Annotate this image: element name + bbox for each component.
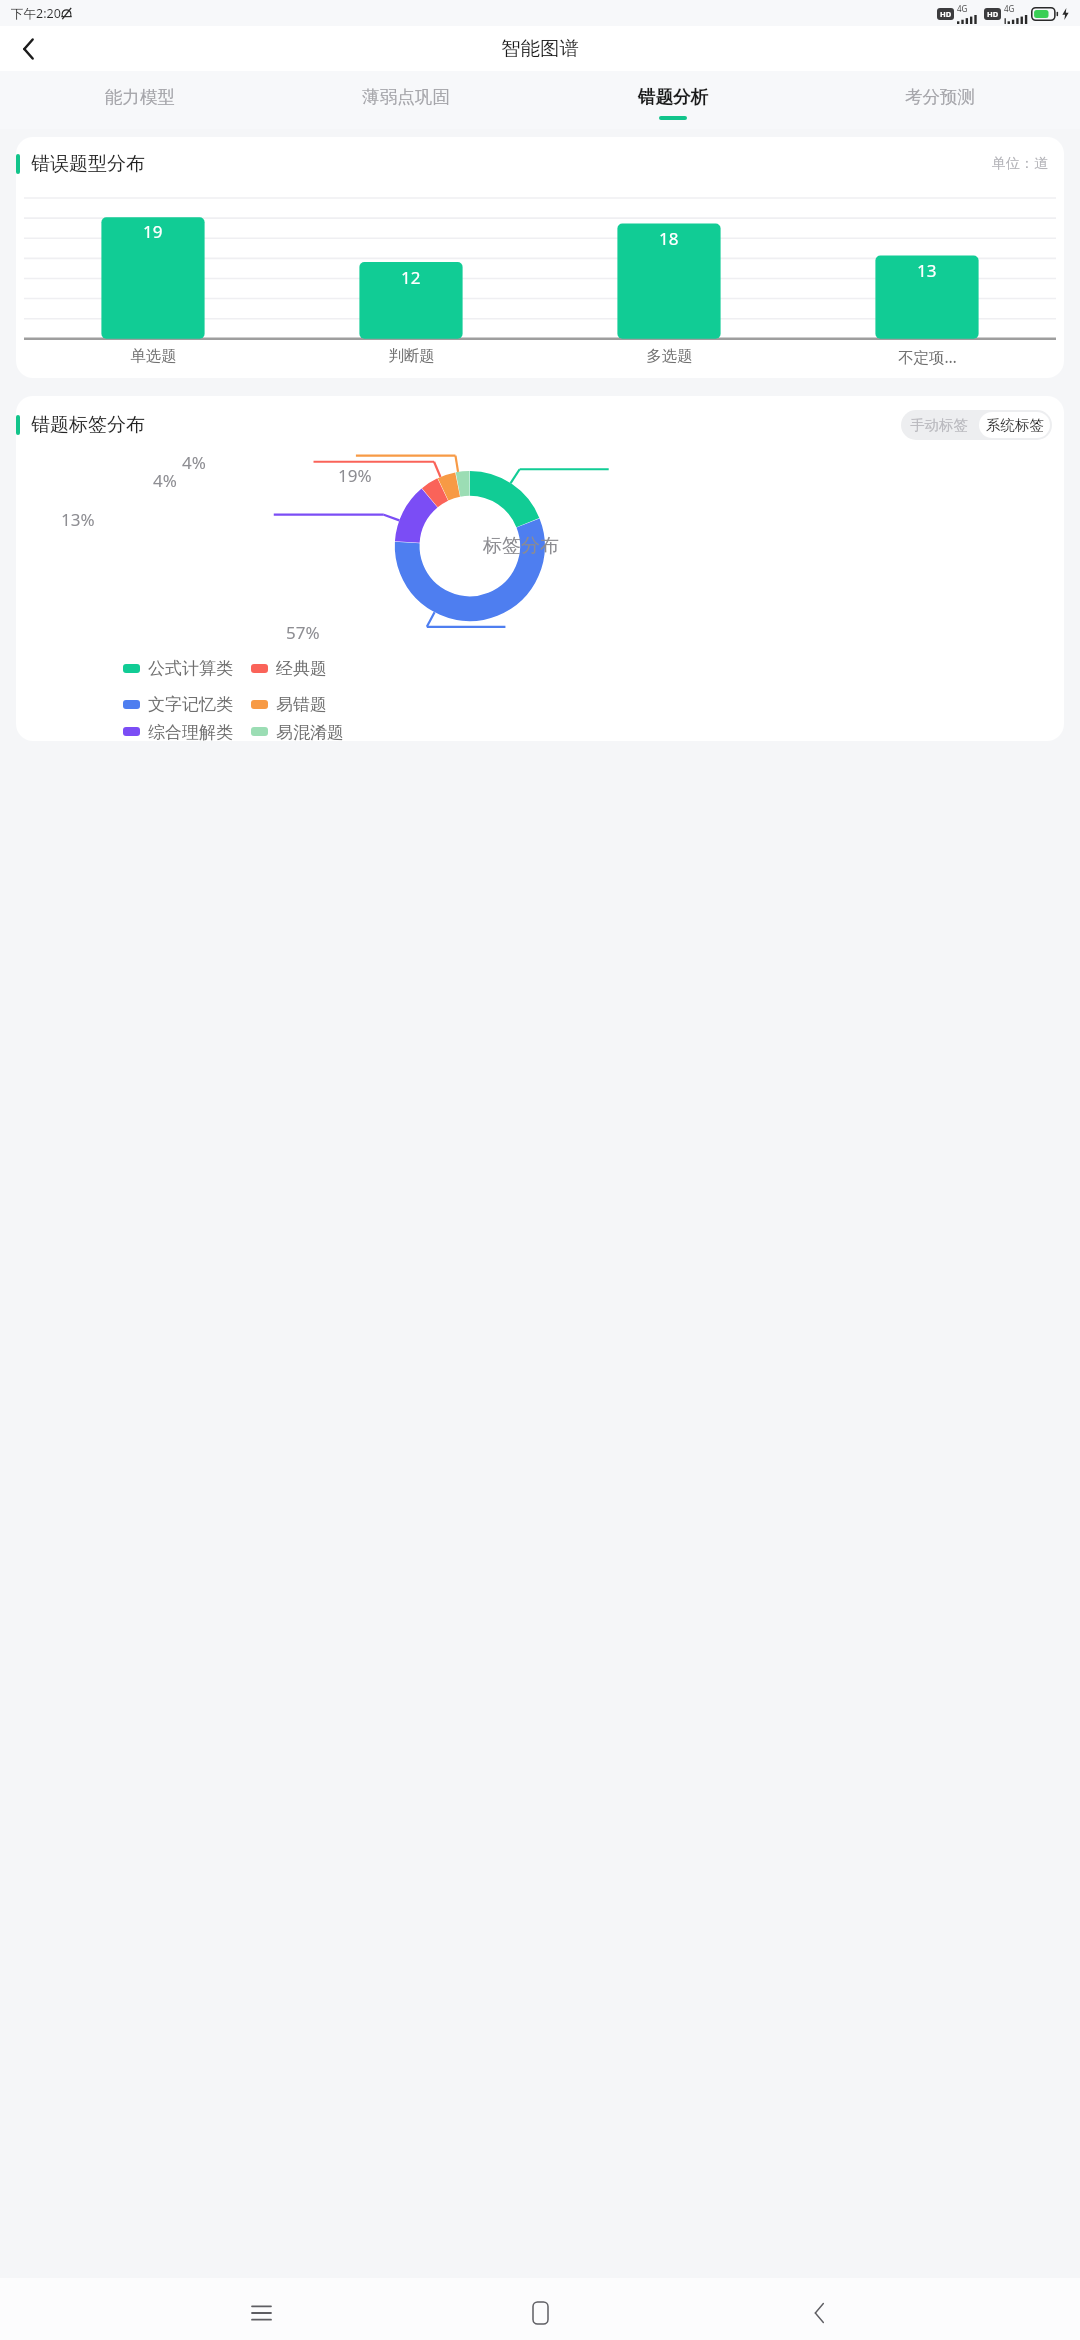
staticText: 公式计算类 xyxy=(148,658,233,679)
button[interactable]: Back xyxy=(796,2290,842,2336)
staticText: 综合理解类 xyxy=(148,722,233,741)
staticText: 13 xyxy=(917,259,937,282)
staticText: 错题分析 xyxy=(638,86,708,108)
staticText: 4G xyxy=(957,3,968,14)
staticText: 智能图谱 xyxy=(501,36,579,61)
button[interactable]: 薄弱点巩固 xyxy=(273,71,539,129)
staticText: 手动标签 xyxy=(910,416,968,434)
staticText: 错题标签分布 xyxy=(31,413,145,437)
button[interactable]: Home xyxy=(517,2290,563,2336)
staticText: 4% xyxy=(182,451,206,474)
button[interactable]: 易混淆题 xyxy=(251,722,361,741)
staticText: 考分预测 xyxy=(905,86,975,108)
button[interactable]: 易错题 xyxy=(251,694,361,715)
staticText: HD xyxy=(987,9,999,19)
staticText: 不定项… xyxy=(898,346,957,367)
staticText: 系统标签 xyxy=(986,416,1044,434)
button[interactable]: 公式计算类 xyxy=(123,658,251,679)
staticText: 多选题 xyxy=(646,346,693,366)
staticText: 判断题 xyxy=(388,346,435,366)
staticText: 4G xyxy=(1004,3,1015,14)
staticText: 易错题 xyxy=(276,694,327,715)
staticText: 能力模型 xyxy=(105,86,175,108)
button[interactable]: 错题分析 xyxy=(539,71,806,129)
button[interactable]: 文字记忆类 xyxy=(123,694,251,715)
button[interactable]: 经典题 xyxy=(251,658,361,679)
staticText: 经典题 xyxy=(276,658,327,679)
staticText: 标签分布 xyxy=(483,534,559,558)
staticText: 13% xyxy=(61,508,95,531)
button[interactable]: 系统标签 xyxy=(979,412,1050,438)
button[interactable]: 能力模型 xyxy=(7,71,273,129)
staticText: 单选题 xyxy=(130,346,177,366)
staticText: 文字记忆类 xyxy=(148,694,233,715)
button[interactable]: 考分预测 xyxy=(806,71,1073,129)
staticText: 57% xyxy=(286,621,320,644)
staticText: 19 xyxy=(143,220,163,243)
staticText: 错误题型分布 xyxy=(31,152,145,176)
staticText: HD xyxy=(940,9,952,19)
staticText: 19% xyxy=(338,464,372,487)
staticText: 4% xyxy=(153,469,177,492)
staticText: 薄弱点巩固 xyxy=(362,86,450,108)
button[interactable]: Back xyxy=(6,27,50,71)
staticText: 单位：道 xyxy=(992,155,1048,173)
staticText: 18 xyxy=(659,227,679,250)
button[interactable]: Recent apps xyxy=(238,2290,284,2336)
staticText: 易混淆题 xyxy=(276,722,344,741)
button[interactable]: 手动标签 xyxy=(901,410,976,440)
staticText: 12 xyxy=(401,266,421,289)
button[interactable]: 综合理解类 xyxy=(123,722,251,741)
staticText: 下午2:20 xyxy=(11,5,61,22)
